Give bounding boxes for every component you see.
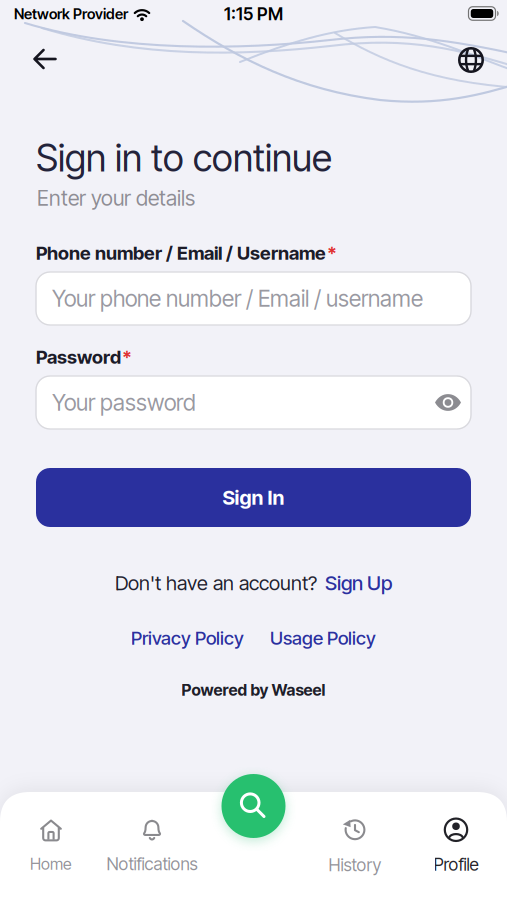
staticText: Network Provider	[14, 5, 128, 23]
button[interactable]: Search	[221, 774, 285, 838]
staticText: Phone number / Email / Username	[36, 242, 326, 264]
staticText: Privacy Policy	[131, 627, 244, 649]
staticText: Notifications	[106, 854, 197, 874]
button[interactable]: Privacy Policy	[131, 627, 244, 649]
staticText: Enter your details	[37, 185, 195, 211]
button[interactable]: Sign Up	[325, 571, 392, 595]
staticText: Sign Up	[325, 571, 392, 595]
button[interactable]: Phone number, Email or Username	[36, 272, 471, 325]
button[interactable]: Sign In	[36, 468, 471, 527]
staticText: Sign In	[222, 486, 284, 509]
staticText: Profile	[433, 854, 478, 875]
button[interactable]: Home	[6, 814, 96, 878]
button[interactable]: Change language	[449, 40, 493, 80]
staticText: *	[122, 346, 132, 368]
button[interactable]: Back	[23, 39, 67, 79]
button[interactable]: Password	[36, 376, 471, 429]
button[interactable]: Profile	[411, 814, 501, 878]
staticText: *	[327, 242, 337, 264]
staticText: Your password	[52, 389, 196, 416]
staticText: 1:15 PM	[224, 4, 283, 24]
button[interactable]: Show password	[428, 382, 468, 422]
staticText: Don't have an account?	[115, 571, 317, 595]
staticText: Password	[36, 346, 121, 368]
staticText: Sign in to continue	[36, 136, 332, 180]
staticText: Powered by Waseel	[181, 681, 325, 699]
button[interactable]: Usage Policy	[270, 627, 376, 649]
staticText: Home	[30, 855, 72, 873]
staticText: Usage Policy	[270, 627, 376, 649]
button[interactable]: History	[310, 814, 400, 878]
staticText: Your phone number / Email / username	[52, 285, 423, 312]
staticText: History	[328, 855, 381, 875]
button[interactable]: Notifications	[97, 814, 207, 878]
